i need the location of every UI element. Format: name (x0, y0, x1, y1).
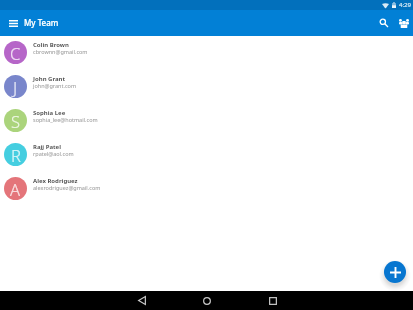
staticText: john@grant.com (33, 82, 77, 89)
button[interactable]: Menu (5, 15, 22, 32)
staticText: R (11, 144, 21, 166)
button[interactable]: J (0, 70, 413, 104)
staticText: S (11, 110, 21, 132)
button[interactable]: S (0, 104, 413, 138)
button[interactable]: A (0, 172, 413, 206)
staticText: cbrownn@gmail.com (33, 48, 88, 55)
staticText: Rajj Patel (33, 143, 61, 151)
button[interactable]: Back (126, 293, 157, 308)
staticText: My Team (24, 17, 59, 28)
button[interactable]: Recents (257, 293, 288, 308)
staticText: A (10, 178, 21, 200)
staticText: Sophia Lee (33, 109, 66, 117)
button[interactable]: Home (191, 293, 222, 308)
button[interactable]: C (0, 36, 413, 70)
staticText: rpatel@aol.com (33, 150, 74, 157)
staticText: Colin Brown (33, 41, 69, 49)
staticText: sophia_lee@hotmail.com (33, 116, 98, 123)
staticText: C (10, 42, 21, 64)
button[interactable]: Contacts (395, 15, 412, 32)
button[interactable]: Search (375, 14, 392, 31)
button[interactable]: Add (384, 261, 406, 283)
staticText: Alex Rodriguez (33, 177, 78, 185)
staticText: J (13, 76, 18, 98)
staticText: 4:29 (399, 1, 411, 9)
button[interactable]: R (0, 138, 413, 172)
staticText: John Grant (33, 75, 66, 83)
staticText: alexrodriguez@gmail.com (33, 184, 101, 191)
